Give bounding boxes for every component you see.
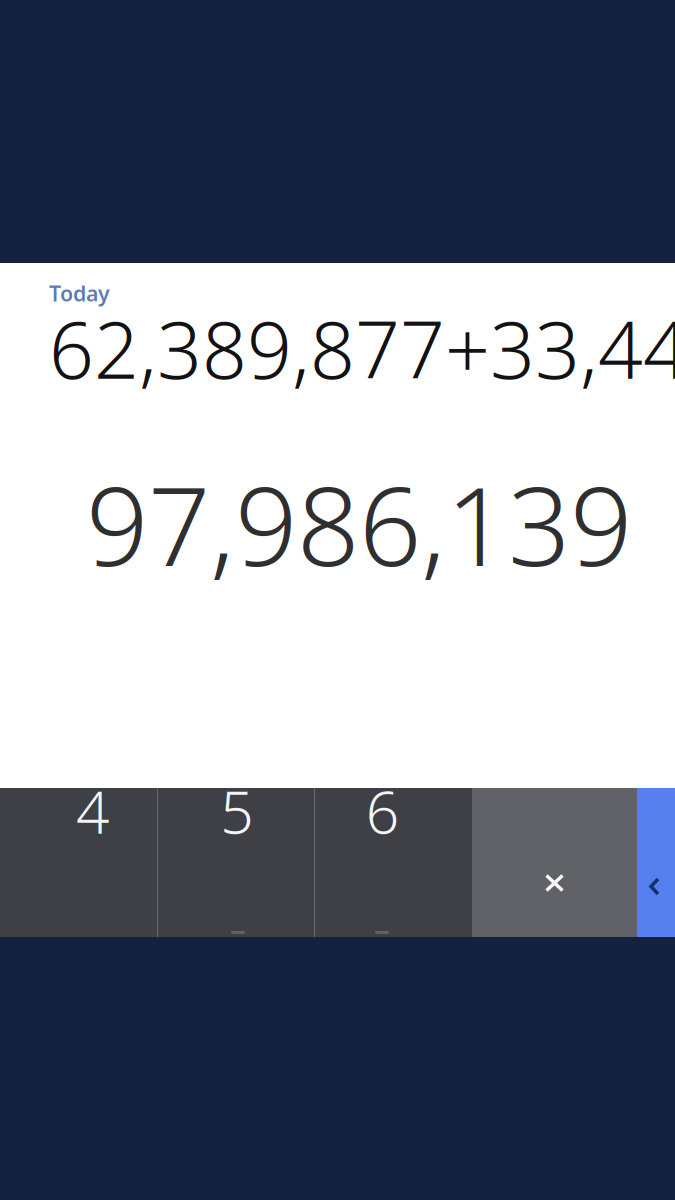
button[interactable]: 5 bbox=[157, 788, 315, 937]
staticText: 97,986,139 bbox=[86, 451, 632, 596]
button[interactable]: 6 bbox=[315, 788, 472, 937]
staticText: 5 bbox=[220, 772, 253, 850]
staticText: 4 bbox=[76, 772, 109, 850]
staticText: 6 bbox=[366, 772, 399, 850]
staticText: 62,389,877+33,44 bbox=[49, 296, 675, 400]
button[interactable]: Clear bbox=[472, 788, 637, 937]
button[interactable]: 4 bbox=[0, 788, 157, 937]
staticText: Today bbox=[49, 279, 110, 307]
button[interactable]: Delete bbox=[637, 788, 675, 937]
